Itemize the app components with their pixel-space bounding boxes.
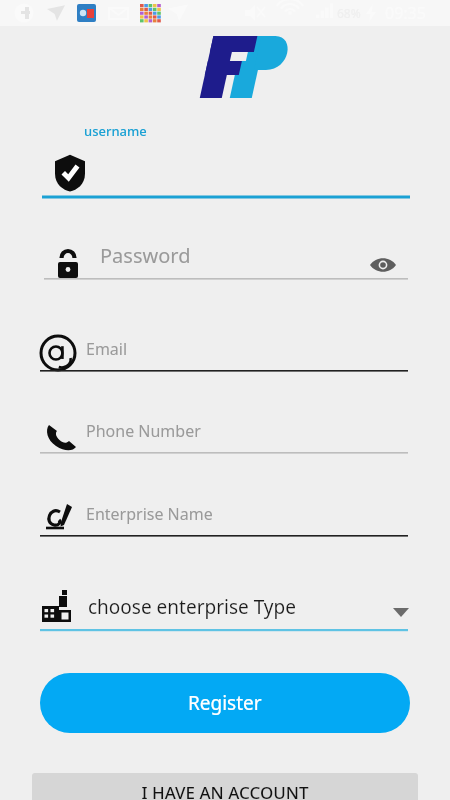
button[interactable]: Email field — [0, 330, 450, 382]
staticText: choose enterprise Type — [88, 594, 296, 620]
staticText: Phone Number — [86, 420, 201, 442]
staticText: Email — [86, 338, 128, 360]
button[interactable]: choose enterprise Type — [0, 588, 450, 632]
staticText: username — [84, 122, 147, 140]
button[interactable]: Phone field — [0, 412, 450, 464]
button[interactable]: Register — [40, 673, 410, 733]
button[interactable]: Enterprise name field — [0, 495, 450, 547]
staticText: Register — [188, 690, 262, 716]
staticText: Enterprise Name — [86, 503, 213, 525]
button[interactable] — [40, 145, 412, 199]
staticText: Password — [100, 242, 191, 269]
staticText: I HAVE AN ACCOUNT — [141, 781, 309, 800]
button[interactable]: I HAVE AN ACCOUNT — [32, 773, 418, 800]
button[interactable]: Password field — [0, 238, 450, 290]
